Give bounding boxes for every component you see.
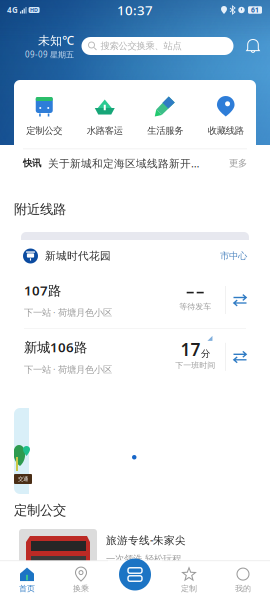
staticText: 10:37 (117, 1, 153, 19)
staticText: 等待发车 (179, 302, 211, 311)
staticText: 水路客运 (87, 125, 123, 136)
staticText: 更多 (229, 157, 247, 169)
button[interactable]: 定制 (162, 560, 216, 599)
staticText: 收藏线路 (208, 125, 244, 136)
button[interactable]: 107路 (14, 272, 256, 328)
button[interactable]: 水路客运 (74, 95, 135, 136)
button[interactable]: 快讯 (14, 149, 256, 177)
staticText: 交通 (18, 476, 28, 482)
button[interactable]: 新城106路 (14, 329, 256, 385)
button[interactable]: 换乘 (54, 560, 108, 599)
staticText: 新城106路 (24, 338, 87, 356)
button[interactable]: Bus pass (115, 554, 155, 594)
staticText: HD (30, 6, 38, 14)
staticText: 快讯 (23, 157, 41, 169)
staticText: 新城时代花园 (45, 249, 111, 262)
button[interactable]: Notifications (241, 33, 265, 59)
staticText: 09-09 星期五 (25, 49, 74, 60)
staticText: 定制公交 (26, 125, 62, 136)
button[interactable]: 生活服务 (135, 95, 195, 136)
staticText: 17 (180, 338, 200, 361)
button[interactable]: 我的 (216, 560, 270, 599)
staticText: 搜索公交换乘、站点 (100, 40, 181, 52)
staticText: 换乘 (73, 584, 89, 593)
staticText: 我的 (235, 584, 251, 593)
staticText: 首页 (19, 584, 35, 593)
staticText: 下一站 · 荷塘月色小区 (24, 306, 112, 319)
staticText: 4G (7, 5, 18, 15)
staticText: 一次领洗 轻松玩程 (106, 553, 181, 565)
staticText: 定制公交 (14, 502, 66, 518)
staticText: 下一班时间 (175, 360, 215, 370)
staticText: 分 (201, 348, 210, 359)
staticText: 生活服务 (147, 125, 183, 136)
staticText: 107路 (24, 281, 61, 299)
staticText: 附近线路 (14, 201, 66, 217)
button[interactable]: 搜索公交换乘、站点 (81, 37, 233, 55)
staticText: 未知℃ (38, 32, 74, 48)
staticText: 61 (251, 6, 259, 14)
staticText: 下一站 · 荷塘月色小区 (24, 363, 112, 375)
staticText: 关于新城和定海区域线路新开… (48, 156, 199, 170)
staticText: 定制 (181, 584, 197, 593)
button[interactable]: 首页 (0, 560, 54, 599)
button[interactable]: 旅游专线-朱家尖 (14, 524, 256, 580)
button[interactable]: 收藏线路 (195, 95, 256, 136)
staticText: 市中心 (220, 250, 247, 262)
button[interactable]: 定制公交 (14, 95, 74, 136)
staticText: 旅游专线-朱家尖 (106, 533, 186, 547)
